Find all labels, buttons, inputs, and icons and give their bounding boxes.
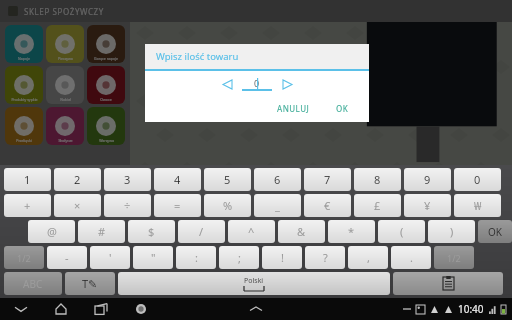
button[interactable]: Wstecz [12, 300, 30, 318]
staticText: £ [374, 198, 381, 213]
button[interactable]: × [54, 194, 101, 217]
button[interactable]: : [176, 246, 216, 269]
button[interactable]: Ekran główny [52, 300, 70, 318]
button[interactable]: Napoje [5, 25, 43, 63]
staticText: = [174, 198, 181, 213]
button[interactable]: Zrzut ekranu [132, 300, 150, 318]
staticText: : [195, 250, 198, 265]
button[interactable]: ! [262, 246, 302, 269]
button[interactable]: Warzywa [87, 107, 125, 145]
staticText: 0 [254, 77, 260, 89]
button[interactable]: = [154, 194, 201, 217]
button[interactable]: 4 [154, 168, 201, 191]
staticText: 0,00 [443, 276, 457, 286]
button[interactable]: ? [305, 246, 345, 269]
staticText: _ [275, 198, 280, 213]
staticText: ANULUJ [277, 103, 310, 114]
button[interactable]: 6 [254, 168, 301, 191]
staticText: ; [238, 250, 241, 265]
staticText: Wpisz ilość towaru [156, 50, 239, 63]
button[interactable]: ) [428, 220, 475, 243]
button[interactable]: 2 [54, 168, 101, 191]
staticText: @ [47, 224, 57, 239]
button[interactable]: ; [219, 246, 259, 269]
button[interactable]: Polski [118, 272, 390, 295]
button[interactable]: # [78, 220, 125, 243]
button[interactable]: 0 [454, 168, 501, 191]
staticText: 10:40 [458, 302, 484, 316]
button[interactable]: ÷ [104, 194, 151, 217]
button[interactable]: ( [378, 220, 425, 243]
staticText: 2 [74, 172, 81, 187]
staticText: # [98, 224, 106, 239]
staticText: . [410, 250, 413, 265]
button[interactable]: - [47, 246, 87, 269]
staticText: Produkty sypkie [11, 97, 38, 102]
button[interactable]: ' [90, 246, 130, 269]
button[interactable]: Produkty sypkie [5, 66, 43, 104]
button[interactable]: $ [128, 220, 175, 243]
button[interactable]: / [178, 220, 225, 243]
button[interactable]: Przekąski [5, 107, 43, 145]
staticText: Polski [244, 276, 264, 286]
button[interactable]: Słodycze [46, 107, 84, 145]
staticText: ? [323, 250, 328, 265]
button[interactable]: % [204, 194, 251, 217]
staticText: 0 [474, 172, 481, 187]
staticText: ' [109, 250, 112, 265]
button[interactable]: _ [254, 194, 301, 217]
staticText: 1/2 [447, 252, 461, 264]
staticText: SKLEP SPOŻYWCZY [24, 6, 104, 17]
staticText: - [65, 250, 69, 265]
staticText: OK [336, 103, 349, 114]
staticText: Przekąski [16, 138, 32, 143]
button[interactable]: 5 [204, 168, 251, 191]
staticText: × [74, 198, 81, 213]
button[interactable]: * [328, 220, 375, 243]
staticText: 5 [224, 172, 231, 187]
button[interactable]: + [4, 194, 51, 217]
button[interactable]: Gorące napoje [87, 25, 125, 63]
button[interactable]: Zmniejsz [220, 77, 234, 91]
button[interactable]: Ostatnie aplikacje [92, 300, 110, 318]
button[interactable]: OK [478, 220, 512, 243]
staticText: ABC [23, 277, 43, 291]
button[interactable]: 3 [104, 168, 151, 191]
button[interactable]: Schowek [393, 272, 503, 295]
button[interactable]: ₩ [454, 194, 501, 217]
button[interactable]: , [348, 246, 388, 269]
button[interactable]: Pieczywo [46, 25, 84, 63]
button[interactable]: 9 [404, 168, 451, 191]
staticText: 8 [374, 172, 381, 187]
button[interactable]: Zwiększ [280, 77, 294, 91]
button[interactable]: ANULUJ [271, 100, 316, 117]
button[interactable]: ¥ [404, 194, 451, 217]
staticText: ) [450, 224, 454, 239]
staticText: 1/2 [17, 252, 31, 264]
staticText: ! [281, 250, 284, 265]
staticText: 3 [124, 172, 131, 187]
button[interactable]: 1 [4, 168, 51, 191]
button[interactable]: Owoce [87, 66, 125, 104]
button[interactable]: € [304, 194, 351, 217]
button[interactable]: OK [330, 100, 355, 117]
button[interactable]: 7 [304, 168, 351, 191]
staticText: € [324, 198, 331, 213]
staticText: OK [488, 225, 502, 239]
button[interactable]: ^ [228, 220, 275, 243]
button[interactable]: Nabiał [46, 66, 84, 104]
button[interactable]: @ [28, 220, 75, 243]
button[interactable]: 1/2 [4, 246, 44, 269]
button[interactable]: ABC [4, 272, 62, 295]
button[interactable]: & [278, 220, 325, 243]
button[interactable]: " [133, 246, 173, 269]
staticText: " [151, 250, 156, 265]
button[interactable]: 1/2 [434, 246, 474, 269]
staticText: Słodycze [58, 138, 73, 143]
button[interactable]: 8 [354, 168, 401, 191]
button[interactable]: . [391, 246, 431, 269]
button[interactable]: £ [354, 194, 401, 217]
staticText: , [367, 250, 370, 265]
staticText: 1 [24, 172, 31, 187]
button[interactable]: Pismo odręczne [65, 272, 115, 295]
